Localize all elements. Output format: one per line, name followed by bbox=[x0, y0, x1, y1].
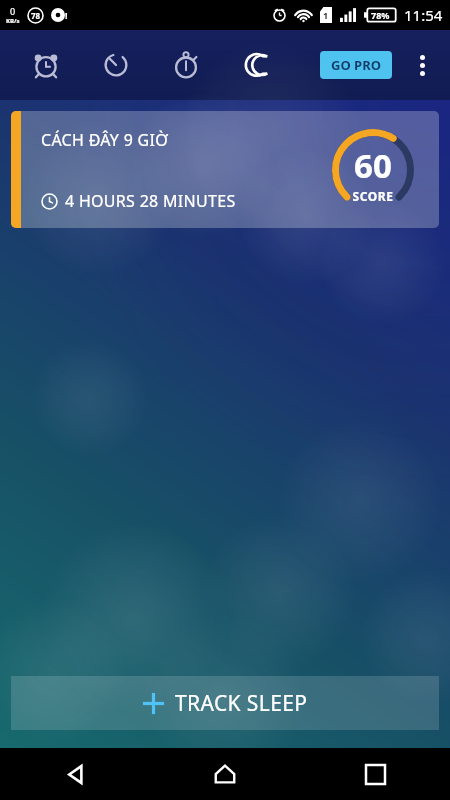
staticText: ! bbox=[65, 9, 68, 21]
button[interactable]: Stopwatch bbox=[162, 41, 210, 89]
staticText: SCORE bbox=[352, 188, 394, 204]
staticText: 1 bbox=[323, 9, 329, 21]
staticText: KB/s bbox=[6, 17, 20, 25]
staticText: 78 bbox=[31, 10, 41, 21]
button[interactable]: GO PRO bbox=[320, 51, 392, 79]
button[interactable]: More options bbox=[400, 43, 444, 87]
staticText: GO PRO bbox=[331, 56, 381, 74]
staticText: CÁCH ĐÂY 9 GIỜ bbox=[41, 129, 169, 151]
staticText: 60 bbox=[354, 143, 392, 188]
staticText: TRACK SLEEP bbox=[175, 689, 308, 718]
button[interactable]: Recent apps bbox=[300, 748, 450, 800]
staticText: 78% bbox=[371, 9, 390, 21]
button[interactable]: Alarm bbox=[22, 41, 70, 89]
staticText: 0 bbox=[10, 5, 16, 17]
button[interactable]: Timer bbox=[92, 41, 140, 89]
button[interactable]: Back bbox=[0, 748, 150, 800]
button[interactable]: CÁCH ĐÂY 9 GIỜ bbox=[11, 111, 439, 228]
button[interactable]: Home bbox=[150, 748, 300, 800]
button[interactable]: Sleep bbox=[232, 41, 280, 89]
staticText: 4 HOURS 28 MINUTES bbox=[65, 190, 236, 212]
button[interactable]: TRACK SLEEP bbox=[11, 676, 439, 730]
staticText: 11:54 bbox=[404, 5, 443, 25]
